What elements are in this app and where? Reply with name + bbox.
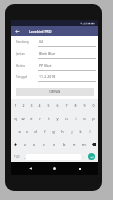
button[interactable]: Symbols	[11, 151, 22, 162]
button[interactable]: 0	[89, 99, 98, 112]
button[interactable]: Shift	[11, 138, 20, 151]
staticText: t	[48, 116, 50, 121]
staticText: .	[83, 155, 84, 159]
button[interactable]: h	[58, 125, 67, 138]
staticText: c	[43, 142, 45, 147]
staticText: v	[53, 142, 56, 147]
button[interactable]: t	[44, 112, 53, 125]
staticText: q	[14, 116, 17, 121]
staticText: 11-2-2018	[39, 74, 56, 79]
button[interactable]: 5	[44, 99, 53, 112]
button[interactable]: k	[76, 125, 85, 138]
staticText: s	[26, 129, 28, 134]
staticText: 7	[65, 103, 68, 108]
button[interactable]: SIMPAN	[16, 88, 94, 96]
button[interactable]: u	[62, 112, 71, 125]
staticText: b	[63, 142, 66, 147]
button[interactable]: 1	[11, 99, 19, 112]
button[interactable]: z	[20, 138, 29, 151]
staticText: g	[52, 129, 55, 134]
button[interactable]: i	[71, 112, 80, 125]
staticText: PP Blue	[39, 63, 52, 68]
button[interactable]: r	[35, 112, 44, 125]
button[interactable]: a	[15, 125, 23, 138]
button[interactable]: p	[89, 112, 98, 125]
staticText: f	[44, 129, 46, 134]
button[interactable]: .	[81, 151, 85, 162]
staticText: 0	[92, 103, 95, 108]
button[interactable]: l	[85, 125, 94, 138]
button[interactable]: x	[29, 138, 39, 151]
staticText: e	[30, 116, 33, 121]
staticText: 5	[47, 103, 50, 108]
staticText: i	[75, 116, 77, 121]
staticText: n	[73, 142, 76, 147]
button[interactable]: g	[49, 125, 58, 138]
staticText: SIMPAN	[49, 90, 61, 94]
button[interactable]: Back	[25, 163, 36, 174]
button[interactable]: y	[53, 112, 62, 125]
button[interactable]: 4	[35, 99, 44, 112]
staticText: 04	[39, 39, 44, 44]
button[interactable]: e	[27, 112, 35, 125]
staticText: Kandang	[16, 40, 29, 44]
staticText: 8	[74, 103, 77, 108]
staticText: z	[24, 142, 26, 147]
staticText: w	[21, 116, 25, 121]
button[interactable]: w	[19, 112, 27, 125]
staticText: 4	[38, 103, 41, 108]
button[interactable]: Home	[49, 163, 60, 174]
button[interactable]: d	[31, 125, 40, 138]
staticText: y	[56, 116, 59, 121]
button[interactable]: Backspace	[89, 138, 98, 151]
staticText: Jantan	[16, 52, 25, 56]
staticText: u	[65, 116, 68, 121]
staticText: 6	[56, 103, 59, 108]
staticText: 1	[14, 103, 17, 108]
button[interactable]: 6	[53, 99, 62, 112]
staticText: r	[39, 116, 41, 121]
staticText: o	[83, 116, 86, 121]
button[interactable]: m	[79, 138, 89, 151]
staticText: p	[92, 116, 95, 121]
staticText: k	[79, 129, 82, 134]
button[interactable]: Back	[11, 26, 24, 37]
button[interactable]: j	[67, 125, 76, 138]
button[interactable]: b	[59, 138, 69, 151]
staticText: 2	[22, 103, 25, 108]
staticText: Lovebird PRO	[29, 29, 52, 34]
staticText: ,	[24, 155, 25, 159]
button[interactable]: 7	[62, 99, 71, 112]
button[interactable]: 8	[71, 99, 80, 112]
staticText: 9	[83, 103, 86, 108]
button[interactable]: 2	[19, 99, 27, 112]
button[interactable]: 9	[80, 99, 89, 112]
staticText: d	[34, 129, 37, 134]
button[interactable]: v	[49, 138, 59, 151]
staticText: j	[71, 129, 73, 134]
button[interactable]: f	[40, 125, 49, 138]
staticText: Blink Blue	[39, 51, 56, 56]
button[interactable]: ,	[22, 151, 26, 162]
staticText: a	[18, 129, 21, 134]
staticText: x	[33, 142, 36, 147]
staticText: ?123	[14, 155, 20, 159]
button[interactable]: o	[80, 112, 89, 125]
staticText: Tanggal	[16, 75, 28, 79]
button[interactable]: n	[69, 138, 79, 151]
staticText: Betina	[16, 64, 26, 68]
button[interactable]: Recents	[74, 163, 85, 174]
button[interactable]: s	[23, 125, 31, 138]
staticText: l	[89, 129, 91, 134]
button[interactable]: Enter	[88, 153, 95, 160]
button[interactable]: 3	[27, 99, 35, 112]
button[interactable]: c	[39, 138, 49, 151]
button[interactable]: q	[11, 112, 19, 125]
staticText: 3	[30, 103, 33, 108]
staticText: m	[82, 142, 86, 147]
staticText: h	[61, 129, 64, 134]
